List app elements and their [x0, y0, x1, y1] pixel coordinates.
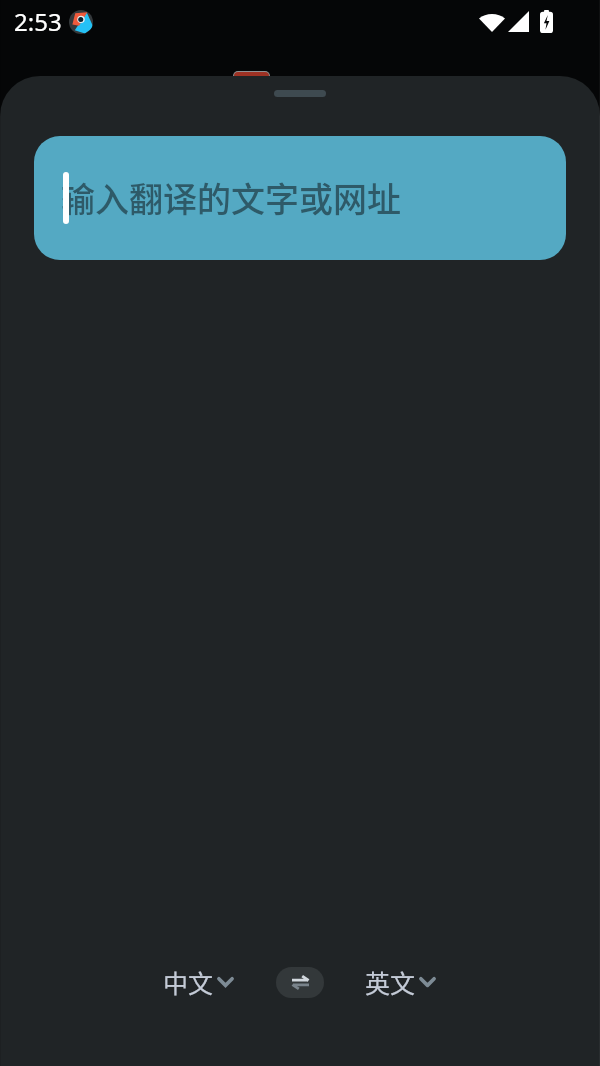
button[interactable]: 中文	[155, 958, 242, 1006]
staticText: 2:53	[14, 5, 62, 38]
button[interactable]: Swap languages	[276, 967, 324, 998]
staticText: 输入翻译的文字或网址	[61, 173, 401, 222]
staticText: 中文	[163, 964, 214, 1000]
button[interactable]: 英文	[357, 958, 444, 1006]
staticText: 英文	[365, 964, 416, 1000]
button[interactable]: 输入翻译的文字或网址	[34, 136, 566, 260]
